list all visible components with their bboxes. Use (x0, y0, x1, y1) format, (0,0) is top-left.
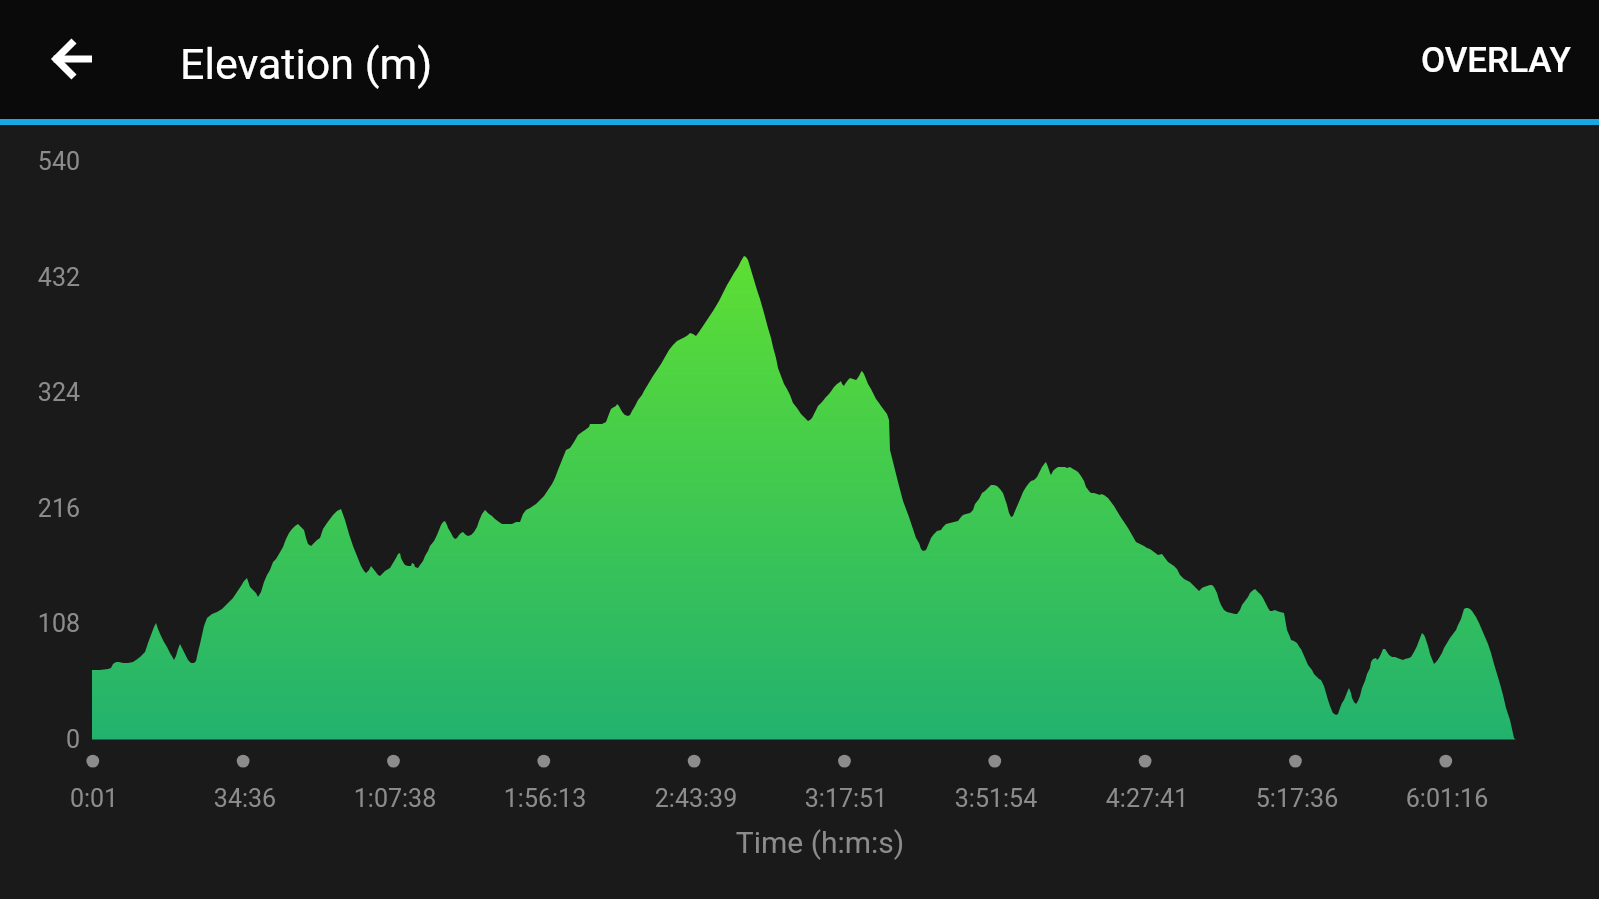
button[interactable]: Navigate up (26, 11, 122, 107)
staticText: 0 (0, 725, 80, 754)
staticText: Elevation (m) (180, 39, 433, 89)
staticText: 2:43:39 (586, 784, 806, 813)
staticText: 108 (0, 609, 80, 638)
staticText: 432 (0, 263, 80, 292)
staticText: Time (h:m:s) (520, 825, 1120, 860)
staticText: OVERLAY (1421, 40, 1571, 81)
staticText: 216 (0, 494, 80, 523)
staticText: 3:17:51 (736, 784, 956, 813)
staticText: 540 (0, 147, 80, 176)
staticText: 0:01 (0, 784, 204, 813)
staticText: 324 (0, 378, 80, 407)
button[interactable]: OVERLAY (1395, 14, 1599, 106)
staticText: 6:01:16 (1337, 784, 1557, 813)
staticText: 3:51:54 (886, 784, 1106, 813)
staticText: 4:27:41 (1037, 784, 1257, 813)
staticText: 5:17:36 (1187, 784, 1407, 813)
staticText: 1:07:38 (285, 784, 505, 813)
staticText: 1:56:13 (435, 784, 655, 813)
staticText: 34:36 (135, 784, 355, 813)
